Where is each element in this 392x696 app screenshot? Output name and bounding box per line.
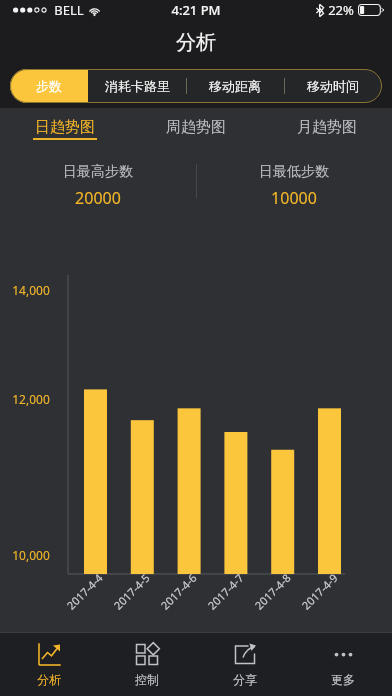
staticText: BELL bbox=[54, 1, 84, 19]
button[interactable]: 日最高步数 bbox=[0, 146, 196, 236]
staticText: 控制 bbox=[135, 672, 159, 687]
staticText: 22% bbox=[328, 1, 354, 19]
staticText: 2017-4-7 bbox=[204, 570, 247, 613]
button[interactable]: 日趋势图 bbox=[0, 108, 130, 146]
staticText: 步数 bbox=[36, 78, 62, 94]
staticText: 分析 bbox=[176, 30, 216, 55]
staticText: 消耗卡路里 bbox=[105, 78, 170, 94]
button[interactable]: 控制 bbox=[98, 632, 196, 696]
staticText: 周趋势图 bbox=[166, 118, 226, 137]
button[interactable]: 更多 bbox=[294, 632, 392, 696]
staticText: 更多 bbox=[331, 672, 355, 687]
staticText: 分享 bbox=[233, 672, 257, 687]
button[interactable]: 步数 bbox=[10, 69, 88, 103]
staticText: 日最低步数 bbox=[259, 163, 329, 181]
staticText: 移动距离 bbox=[209, 78, 261, 94]
button[interactable]: 日最低步数 bbox=[196, 146, 392, 236]
staticText: 20000 bbox=[75, 187, 121, 209]
staticText: 14,000 bbox=[12, 282, 50, 298]
staticText: 移动时间 bbox=[307, 78, 359, 94]
staticText: 2017-4-8 bbox=[251, 570, 294, 613]
staticText: 2017-4-4 bbox=[63, 570, 106, 613]
staticText: 日趋势图 bbox=[35, 118, 95, 137]
staticText: 12,000 bbox=[12, 391, 50, 407]
staticText: 月趋势图 bbox=[297, 118, 357, 137]
staticText: 4:21 PM bbox=[171, 1, 221, 19]
staticText: 10000 bbox=[271, 187, 317, 209]
staticText: 2017-4-9 bbox=[298, 570, 341, 613]
staticText: 2017-4-6 bbox=[157, 570, 200, 613]
button[interactable]: 消耗卡路里 bbox=[88, 69, 186, 103]
staticText: 分析 bbox=[37, 672, 61, 687]
button[interactable]: 分析 bbox=[0, 632, 98, 696]
staticText: 日最高步数 bbox=[63, 163, 133, 181]
staticText: 2017-4-5 bbox=[110, 570, 153, 613]
button[interactable]: 移动时间 bbox=[284, 69, 382, 103]
button[interactable]: 周趋势图 bbox=[130, 108, 261, 146]
button[interactable]: 移动距离 bbox=[186, 69, 284, 103]
button[interactable]: 分享 bbox=[196, 632, 294, 696]
staticText: 10,000 bbox=[12, 547, 50, 563]
button[interactable]: 月趋势图 bbox=[261, 108, 392, 146]
